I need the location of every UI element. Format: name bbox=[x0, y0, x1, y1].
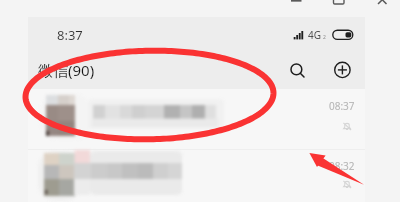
staticText: 08:37 bbox=[329, 99, 355, 113]
staticText: 08:32 bbox=[329, 159, 355, 173]
staticText: 2 bbox=[323, 34, 326, 41]
button[interactable]: Add bbox=[331, 58, 353, 80]
button[interactable] bbox=[28, 89, 365, 150]
staticText: 4G bbox=[308, 28, 321, 42]
staticText: 8:37 bbox=[57, 26, 83, 44]
button[interactable]: Search bbox=[286, 58, 308, 80]
staticText: 微信(90) bbox=[38, 60, 95, 80]
button[interactable] bbox=[28, 150, 365, 202]
